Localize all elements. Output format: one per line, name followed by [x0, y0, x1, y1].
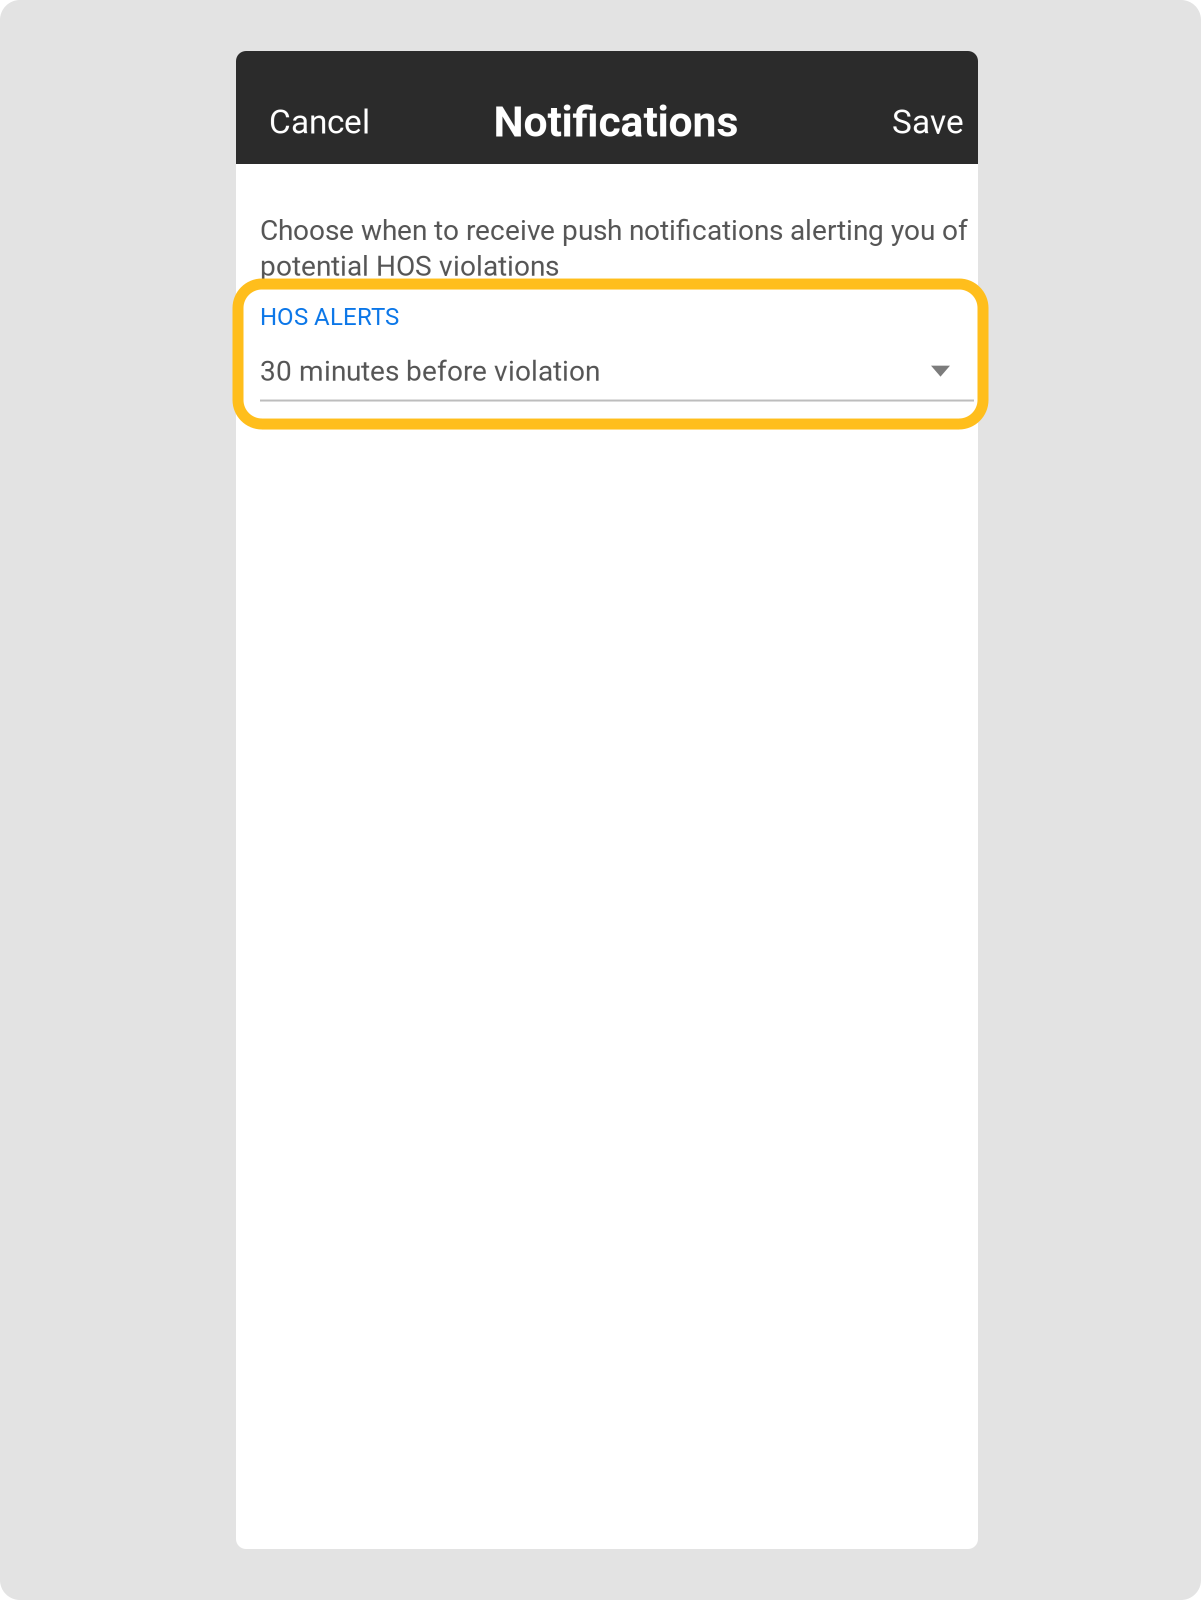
staticText: Choose when to receive push notification… — [260, 214, 968, 283]
button[interactable]: Cancel — [269, 84, 370, 160]
staticText: Save — [892, 102, 964, 142]
staticText: Cancel — [269, 102, 370, 142]
staticText: Notifications — [493, 97, 738, 147]
button[interactable]: HOS ALERTS — [260, 303, 974, 401]
staticText: HOS ALERTS — [260, 303, 399, 331]
staticText: 30 minutes before violation — [260, 355, 600, 388]
button[interactable]: Save — [892, 84, 964, 160]
